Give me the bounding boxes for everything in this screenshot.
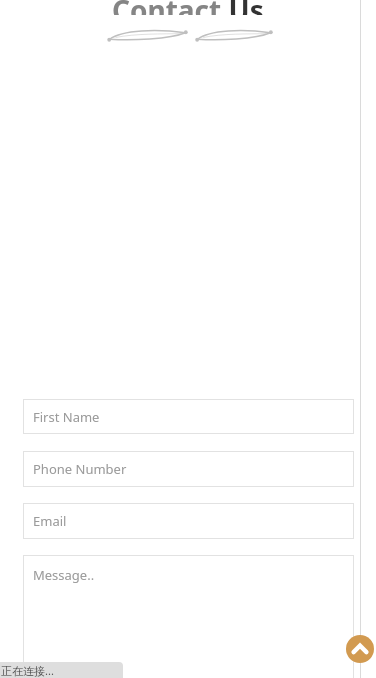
staticText: 正在连接...: [1, 663, 54, 678]
button[interactable]: Scroll to top: [346, 635, 374, 663]
staticText: First Name: [33, 408, 100, 426]
staticText: Contact Us: [112, 0, 264, 15]
button[interactable]: Message..: [23, 555, 354, 678]
button[interactable]: Phone Number: [23, 451, 354, 487]
staticText: Email: [33, 512, 67, 530]
staticText: Phone Number: [33, 460, 127, 478]
button[interactable]: First Name: [23, 399, 354, 434]
button[interactable]: Email: [23, 503, 354, 539]
staticText: Message..: [33, 566, 95, 584]
